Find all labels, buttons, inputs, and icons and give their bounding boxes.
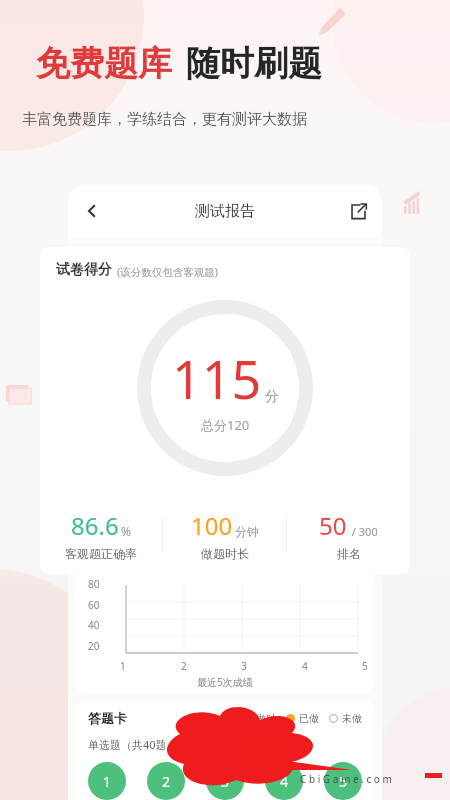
staticText: 免费题库 (36, 42, 172, 85)
button[interactable]: 4 (265, 762, 303, 800)
button[interactable]: 分享 (340, 193, 376, 229)
button[interactable]: 3 (206, 762, 244, 800)
staticText: 客观题正确率 (65, 546, 137, 561)
staticText: 50 (319, 509, 347, 542)
staticText: 答题卡 (88, 710, 127, 726)
staticText: 86.6 (71, 509, 119, 542)
button[interactable]: 100 (163, 509, 286, 561)
staticText: 丰富免费题库，学练结合，更有测评大数据 (22, 110, 307, 129)
staticText: 随时刷题 (186, 42, 322, 85)
staticText: % (121, 523, 131, 539)
staticText: 单选题（共40题，40分） (88, 737, 213, 752)
staticText: 60 (88, 598, 100, 612)
staticText: 排名 (337, 546, 361, 561)
staticText: 5 (362, 659, 368, 673)
staticText: 最近5次成绩 (197, 675, 253, 689)
staticText: 40 (88, 618, 100, 632)
staticText: 测试报告 (195, 202, 255, 221)
staticText: 做题时长 (225, 555, 261, 566)
staticText: 分钟 (235, 524, 259, 539)
staticText: 4 (280, 772, 289, 791)
staticText: 未做 (342, 712, 362, 725)
staticText: 已做 (299, 712, 319, 725)
staticText: 80 (88, 577, 100, 591)
staticText: 3 (221, 772, 230, 791)
staticText: 1 (120, 659, 126, 673)
staticText: (该分数仅包含客观题) (117, 265, 218, 279)
button[interactable]: 1 (88, 762, 126, 800)
staticText: 4 (302, 659, 308, 673)
button[interactable]: 2 (147, 762, 185, 800)
staticText: / 300 (349, 524, 378, 539)
button[interactable]: 86.6 (40, 509, 162, 561)
button[interactable]: 返回 (72, 191, 112, 231)
staticText: 5 (339, 772, 348, 791)
staticText: CBI (244, 737, 295, 778)
staticText: 做题时长 (201, 546, 249, 561)
staticText: 20 (88, 639, 100, 653)
staticText: 做对 (256, 712, 276, 725)
staticText: 分 (265, 388, 279, 406)
staticText: 1 (103, 772, 112, 791)
staticText: 客观题正确率 (120, 555, 174, 566)
staticText: 2 (181, 659, 187, 673)
staticText: 100 (191, 509, 233, 542)
staticText: 3 (241, 659, 247, 673)
staticText: 2 (162, 772, 171, 791)
staticText: 总分120 (201, 416, 250, 434)
staticText: 试卷得分 (56, 261, 112, 279)
button[interactable]: 5 (324, 762, 362, 800)
staticText: 115 (172, 343, 262, 414)
button[interactable]: 50 (287, 509, 410, 561)
staticText: C b i G a m e . c o m (300, 772, 392, 786)
